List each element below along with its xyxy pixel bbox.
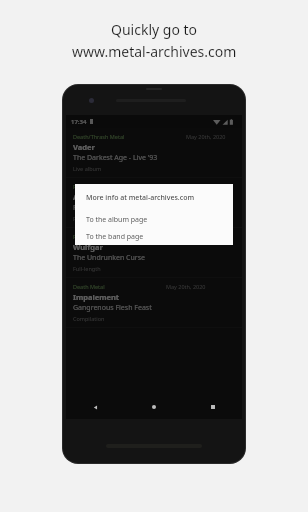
staticText: Power Metal <box>73 183 106 190</box>
staticText: Quickly go to <box>111 20 198 39</box>
button[interactable]: Back <box>66 395 124 419</box>
staticText: Vader <box>73 142 95 152</box>
button[interactable]: Folk Metal <box>66 228 242 277</box>
staticText: Folk Metal <box>73 233 100 240</box>
staticText: May 20th, 2020 <box>186 133 226 140</box>
staticText: Full-length <box>73 215 101 222</box>
staticText: Full-length <box>73 265 101 272</box>
staticText: Death Metal <box>73 283 105 290</box>
button[interactable]: To the band page <box>75 228 233 245</box>
staticText: Arida Vortex <box>73 192 120 202</box>
staticText: 17:34 <box>71 118 87 126</box>
staticText: Death/Thrash Metal <box>73 133 125 140</box>
staticText: May 20th, 2020 <box>166 283 206 290</box>
staticText: To the band page <box>86 232 144 242</box>
staticText: More info at metal-archives.com <box>86 193 195 203</box>
staticText: May 20th, 2020 <box>167 183 207 190</box>
staticText: Gangrenous Flesh Feast <box>73 303 152 313</box>
staticText: Compilation <box>73 315 105 322</box>
button[interactable]: Home <box>124 395 183 419</box>
staticText: The Undrunken Curse <box>73 253 146 263</box>
button[interactable]: Death Metal <box>66 278 242 327</box>
button[interactable]: Power Metal <box>66 178 242 227</box>
staticText: Wulfgar <box>73 242 103 252</box>
staticText: To the album page <box>86 215 148 225</box>
staticText: The Darkest Age - Live '93 <box>73 153 158 163</box>
button[interactable]: Death/Thrash Metal <box>66 128 242 177</box>
button[interactable]: To the album page <box>75 211 233 228</box>
staticText: www.metal-archives.com <box>72 42 237 61</box>
staticText: Live album <box>73 165 102 172</box>
staticText: Riders of Steel <box>73 203 121 213</box>
staticText: Impalement <box>73 292 120 302</box>
button[interactable]: Recent apps <box>183 395 242 419</box>
